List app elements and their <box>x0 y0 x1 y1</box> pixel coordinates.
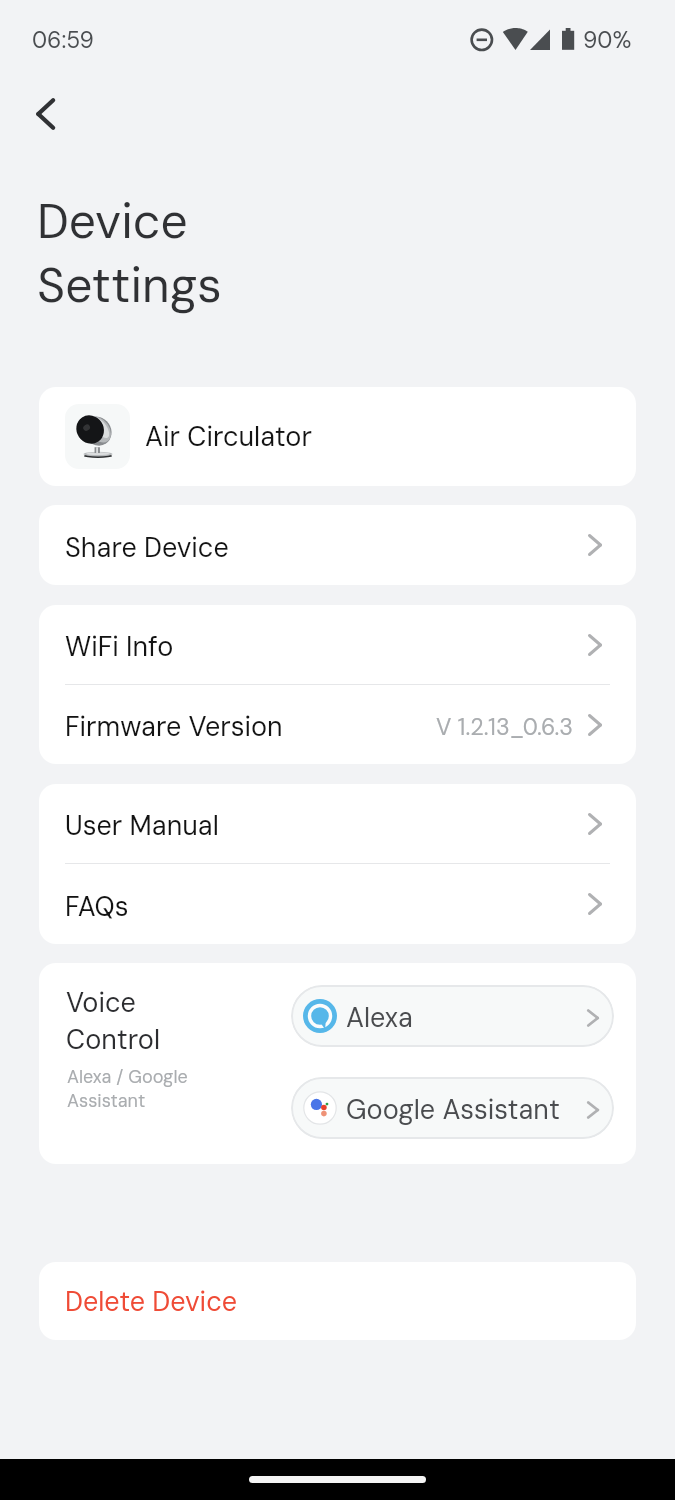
staticText: V 1.2.13_0.6.3 <box>436 712 574 742</box>
staticText: Alexa / Google Assistant <box>67 1065 188 1113</box>
button[interactable]: Air Circulator <box>39 387 636 486</box>
staticText: Air Circulator <box>145 419 312 454</box>
staticText: Share Device <box>65 530 229 565</box>
button[interactable]: FAQs <box>39 864 636 944</box>
staticText: Google Assistant <box>346 1092 560 1127</box>
staticText: WiFi Info <box>65 629 174 664</box>
staticText: Device Settings <box>37 190 222 317</box>
button[interactable]: Share Device <box>39 505 636 585</box>
button[interactable]: Back <box>12 78 84 150</box>
staticText: Alexa <box>346 1000 413 1035</box>
staticText: User Manual <box>65 808 219 843</box>
button[interactable]: WiFi Info <box>39 605 636 684</box>
staticText: FAQs <box>65 889 129 924</box>
staticText: 06:59 <box>32 25 94 55</box>
staticText: Delete Device <box>65 1284 237 1319</box>
staticText: Firmware Version <box>65 709 283 744</box>
button[interactable]: Google Assistant <box>291 1077 614 1139</box>
staticText: 90% <box>583 25 632 55</box>
button[interactable]: User Manual <box>39 784 636 863</box>
button[interactable]: Alexa <box>291 985 614 1047</box>
staticText: Voice Control <box>66 985 161 1058</box>
button[interactable]: Firmware Version <box>39 685 636 764</box>
button[interactable]: Delete Device <box>39 1262 636 1340</box>
